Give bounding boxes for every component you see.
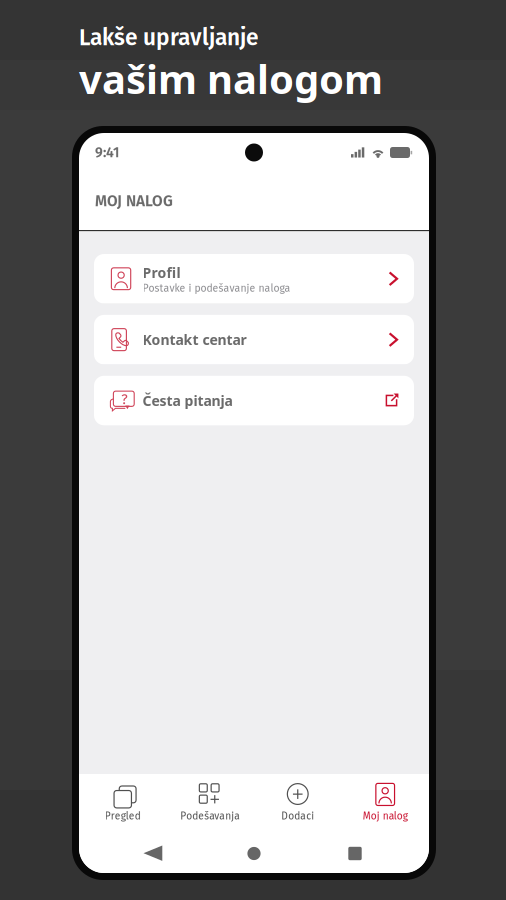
- button[interactable]: Kontakt centar: [94, 315, 414, 364]
- staticText: vašim nalogom: [79, 51, 383, 106]
- button[interactable]: Profil: [94, 254, 414, 303]
- button[interactable]: Pregled: [79, 774, 166, 828]
- staticText: Dodaci: [281, 810, 314, 822]
- staticText: Moj nalog: [363, 810, 408, 822]
- staticText: Kontakt centar: [142, 330, 246, 349]
- button[interactable]: Recent apps: [334, 828, 376, 873]
- staticText: MOJ NALOG: [95, 192, 173, 210]
- staticText: Postavke i podešavanje naloga: [142, 282, 290, 294]
- button[interactable]: Back: [132, 828, 174, 873]
- button[interactable]: ?: [94, 376, 414, 425]
- staticText: ?: [121, 391, 127, 408]
- button[interactable]: Podešavanja: [166, 774, 254, 828]
- button[interactable]: Home: [233, 828, 275, 873]
- staticText: Podešavanja: [180, 810, 240, 822]
- staticText: Česta pitanja: [142, 391, 232, 410]
- staticText: Lakše upravljanje: [79, 24, 258, 51]
- button[interactable]: Moj nalog: [341, 774, 429, 828]
- staticText: Profil: [142, 263, 180, 282]
- staticText: 9:41: [95, 144, 119, 161]
- staticText: Pregled: [105, 810, 141, 822]
- button[interactable]: Dodaci: [254, 774, 341, 828]
